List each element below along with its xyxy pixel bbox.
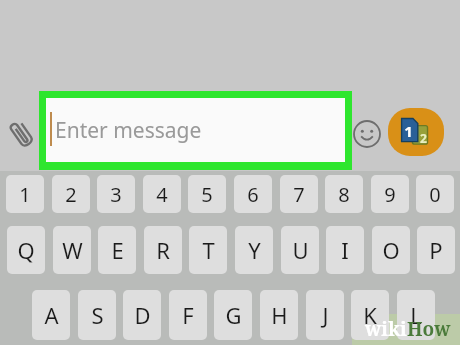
button[interactable]: Attach	[4, 108, 40, 160]
button[interactable]: 9	[371, 175, 409, 213]
button[interactable]: G	[214, 290, 252, 340]
button[interactable]: A	[32, 290, 70, 340]
button[interactable]: R	[144, 226, 182, 274]
button[interactable]: Enter message	[46, 98, 345, 162]
button[interactable]: J	[306, 290, 344, 340]
staticText: G	[225, 300, 242, 330]
staticText: D	[134, 300, 151, 330]
staticText: O	[382, 235, 400, 265]
staticText: A	[44, 300, 59, 330]
staticText: K	[363, 300, 377, 330]
button[interactable]: 0	[416, 175, 454, 213]
button[interactable]: L	[397, 290, 435, 340]
staticText: U	[292, 235, 309, 265]
staticText: 5	[201, 181, 213, 208]
button[interactable]: Q	[7, 226, 45, 274]
button[interactable]: T	[189, 226, 227, 274]
staticText: Enter message	[55, 116, 202, 145]
staticText: How	[407, 316, 451, 342]
staticText: P	[429, 235, 443, 265]
staticText: H	[271, 300, 288, 330]
staticText: 2	[65, 181, 77, 208]
button[interactable]: 2	[52, 175, 90, 213]
button[interactable]: U	[281, 226, 319, 274]
button[interactable]: Y	[235, 226, 273, 274]
staticText: 2	[420, 130, 427, 146]
staticText: S	[91, 300, 104, 330]
staticText: W	[62, 235, 83, 265]
staticText: 1	[404, 121, 413, 141]
button[interactable]: D	[123, 290, 161, 340]
button[interactable]: I	[326, 226, 364, 274]
staticText: 4	[156, 181, 168, 208]
staticText: F	[182, 300, 194, 330]
staticText: E	[111, 235, 124, 265]
staticText: wiki	[365, 316, 407, 342]
button[interactable]: Emoji	[348, 114, 386, 154]
staticText: R	[156, 235, 170, 265]
button[interactable]: 4	[143, 175, 181, 213]
staticText: L	[410, 300, 422, 330]
button[interactable]: Select SIM	[388, 108, 444, 156]
button[interactable]: E	[98, 226, 136, 274]
button[interactable]: 3	[97, 175, 135, 213]
button[interactable]: 5	[188, 175, 226, 213]
staticText: 7	[293, 181, 305, 208]
button[interactable]: F	[169, 290, 207, 340]
staticText: 6	[247, 181, 259, 208]
button[interactable]: 1	[6, 175, 44, 213]
staticText: I	[341, 235, 349, 265]
button[interactable]: K	[351, 290, 389, 340]
staticText: 1	[19, 181, 31, 208]
button[interactable]: 7	[280, 175, 318, 213]
button[interactable]: 6	[234, 175, 272, 213]
button[interactable]: 8	[325, 175, 363, 213]
staticText: 3	[110, 181, 122, 208]
button[interactable]: H	[260, 290, 298, 340]
button[interactable]: P	[417, 226, 455, 274]
staticText: 0	[429, 181, 441, 208]
staticText: 9	[384, 181, 396, 208]
staticText: 8	[338, 181, 350, 208]
staticText: T	[202, 235, 215, 265]
button[interactable]: S	[78, 290, 116, 340]
staticText: Q	[17, 235, 35, 265]
staticText: J	[322, 300, 329, 330]
button[interactable]: W	[53, 226, 91, 274]
button[interactable]: O	[372, 226, 410, 274]
staticText: Y	[248, 235, 261, 265]
